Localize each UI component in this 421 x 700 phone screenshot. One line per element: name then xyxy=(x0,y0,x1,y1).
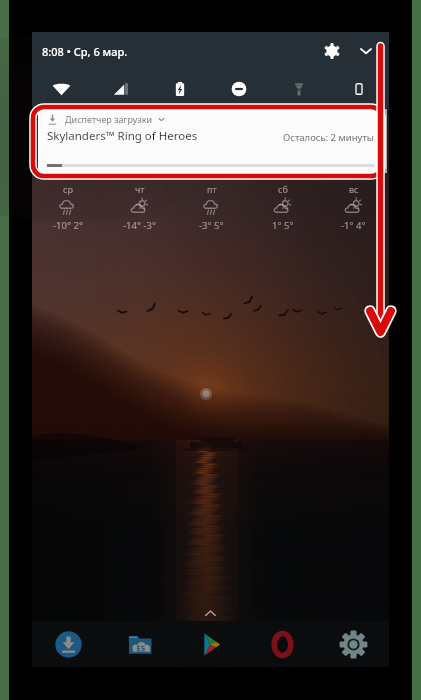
staticText: -1° 4° xyxy=(341,219,366,232)
staticText: сб xyxy=(278,183,288,195)
button[interactable]: сб xyxy=(247,183,318,232)
button[interactable]: вс xyxy=(318,183,389,232)
button[interactable]: чт xyxy=(104,183,176,232)
staticText: ср xyxy=(63,183,73,195)
button[interactable]: Settings xyxy=(317,36,347,66)
staticText: 8:08 • Ср, 6 мар. xyxy=(42,44,128,59)
staticText: вс xyxy=(349,183,359,195)
staticText: Осталось: 2 минуты xyxy=(283,131,375,144)
staticText: чт xyxy=(135,183,145,195)
staticText: пт xyxy=(207,183,217,195)
staticText: -3° 5° xyxy=(199,219,224,232)
button[interactable]: Opera xyxy=(247,621,318,667)
staticText: 1° 5° xyxy=(272,219,294,232)
button[interactable]: Settings xyxy=(318,621,389,667)
button[interactable]: Downloads xyxy=(32,621,104,667)
button[interactable]: Диспетчер загрузки xyxy=(38,108,384,174)
staticText: -10° 2° xyxy=(53,219,83,232)
button[interactable]: Flashlight xyxy=(269,70,329,108)
button[interactable]: Play Store xyxy=(176,621,247,667)
button[interactable]: Expand xyxy=(351,36,381,66)
staticText: Диспетчер загрузки xyxy=(65,113,153,125)
button[interactable]: ES File Explorer xyxy=(104,621,176,667)
staticText: -14° -3° xyxy=(123,219,157,232)
staticText: Skylanders™ Ring of Heroes xyxy=(47,128,198,144)
button[interactable]: Wi-Fi xyxy=(32,70,91,108)
button[interactable]: Auto rotate xyxy=(329,70,389,108)
button[interactable]: Battery saver xyxy=(150,70,209,108)
button[interactable]: Mobile data xyxy=(91,70,150,108)
button[interactable]: Do not disturb xyxy=(209,70,269,108)
button[interactable]: ср xyxy=(32,183,104,232)
button[interactable]: пт xyxy=(176,183,247,232)
